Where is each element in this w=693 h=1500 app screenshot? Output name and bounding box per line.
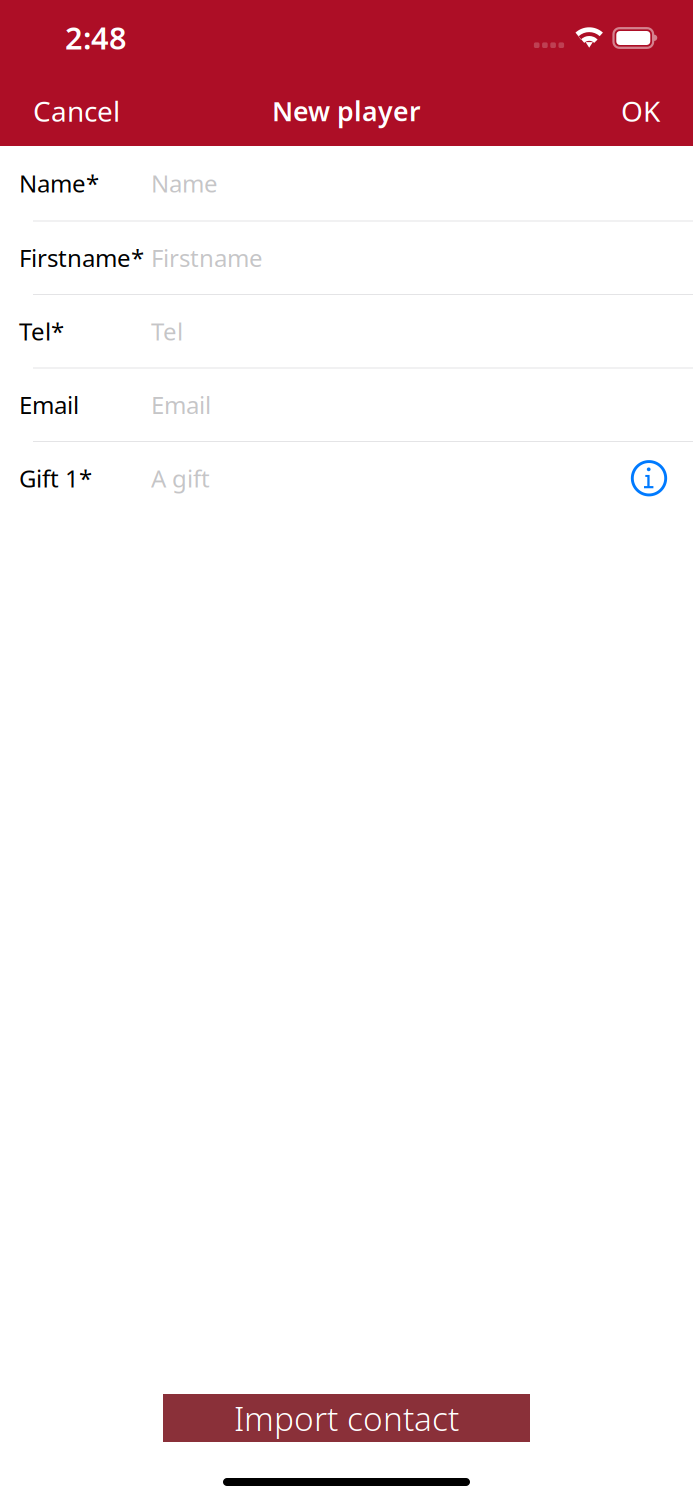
staticText: Import contact [234,1396,459,1440]
button[interactable]: Import contact [163,1394,530,1442]
staticText: Tel [151,315,183,347]
staticText: 2:48 [65,17,127,58]
staticText: OK [621,92,660,130]
staticText: Name* [19,167,99,199]
staticText: Tel* [19,315,64,347]
staticText: New player [272,93,421,129]
staticText: Email [19,389,79,421]
button[interactable]: More info about gift [627,456,671,500]
staticText: A gift [151,462,210,494]
staticText: Firstname* [19,242,144,274]
button[interactable]: OK [613,82,668,140]
staticText: Email [151,389,211,421]
staticText: Firstname [151,242,263,274]
staticText: Name [151,167,218,199]
staticText: Cancel [33,92,120,130]
staticText: Gift 1* [19,462,92,494]
button[interactable]: Cancel [25,82,128,140]
